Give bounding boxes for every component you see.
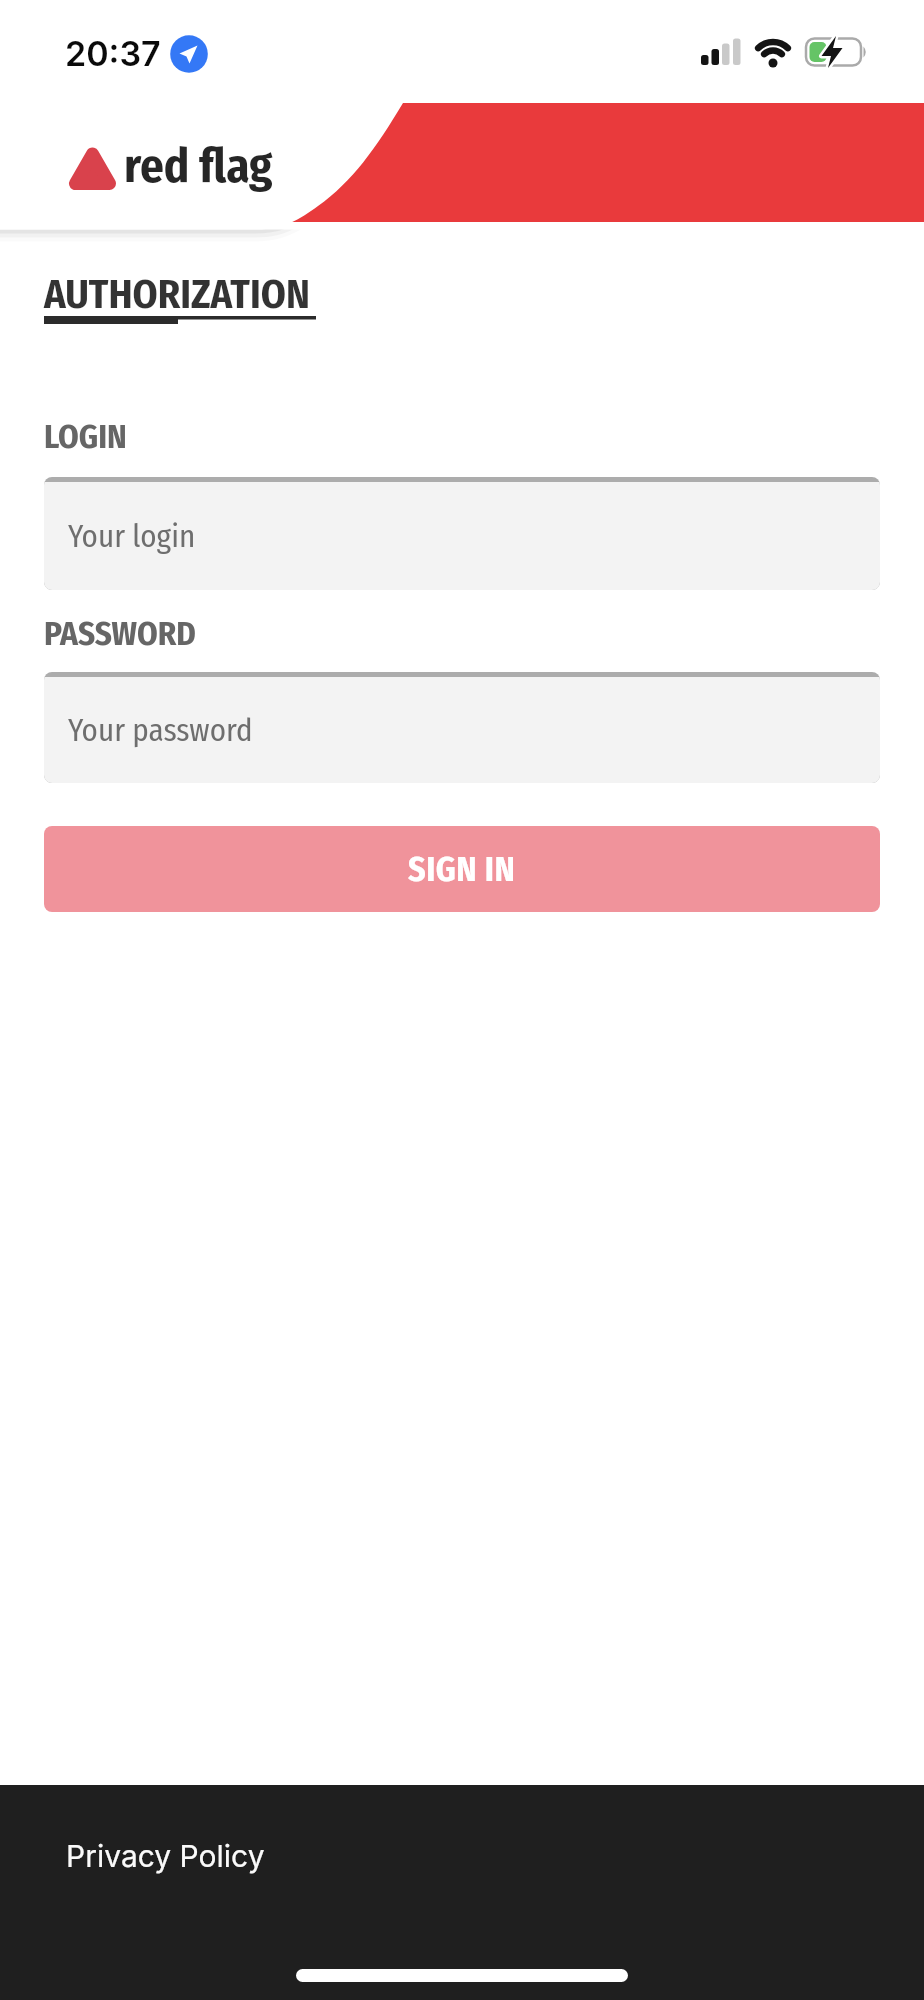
staticText: red flag — [124, 138, 273, 194]
button[interactable]: red flag — [60, 125, 320, 205]
staticText: Your password — [68, 712, 253, 749]
staticText: PASSWORD — [44, 614, 196, 654]
staticText: SIGN IN — [408, 849, 516, 890]
button[interactable]: Privacy Policy — [66, 1838, 265, 1874]
staticText: AUTHORIZATION — [44, 271, 310, 319]
staticText: LOGIN — [44, 417, 127, 457]
button[interactable]: Your password — [44, 672, 880, 783]
staticText: Your login — [68, 518, 196, 555]
button[interactable]: SIGN IN — [44, 826, 880, 912]
staticText: 20:37 — [65, 33, 161, 74]
button[interactable]: Your login — [44, 477, 880, 590]
